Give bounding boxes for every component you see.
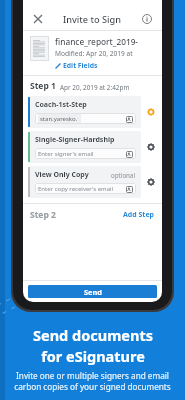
button[interactable]: View Only Copy [28, 166, 141, 198]
staticText: Modified: Apr 20, 2019 at 2:42pm [55, 49, 155, 58]
button[interactable]: Single-Signer-Hardship [28, 131, 141, 163]
button[interactable]: Send [28, 285, 157, 298]
staticText: stan.yaresko.test@gmail.com [40, 115, 79, 123]
button[interactable]: Contacts [125, 115, 133, 123]
button[interactable]: finance_report_2019-by_tag [30, 36, 155, 70]
staticText: Invite one or multiple signers and email… [8, 370, 177, 392]
staticText: Send documents [33, 325, 153, 345]
staticText: Single-Signer-Hardship [35, 135, 115, 145]
button[interactable]: Close [30, 11, 46, 27]
staticText: Coach-1st-Step [35, 100, 87, 110]
staticText: optional [111, 171, 136, 179]
staticText: Step 2 [30, 209, 56, 221]
staticText: finance_report_2019-by_tag [55, 36, 155, 47]
button[interactable]: Contacts [125, 150, 133, 158]
staticText: Enter copy receiver's email [38, 185, 114, 193]
button[interactable]: Add Step [123, 210, 155, 220]
staticText: Send [84, 287, 102, 297]
staticText: Add Step [123, 210, 155, 220]
button[interactable]: Contacts [125, 185, 133, 193]
button[interactable]: Coach-1st-Step [28, 96, 141, 128]
button[interactable]: Edit Fields [55, 61, 98, 70]
button[interactable]: Settings [145, 141, 157, 153]
staticText: Edit Fields [63, 61, 98, 70]
staticText: Invite to Sign [63, 13, 122, 26]
staticText: Apr 20, 2019 at 2:42pm [60, 83, 130, 92]
button[interactable]: Settings [145, 106, 157, 118]
staticText: Step 1 [30, 80, 56, 92]
staticText: for eSignature [41, 346, 145, 366]
staticText: View Only Copy [35, 170, 89, 180]
staticText: Enter signer's email [38, 150, 94, 158]
button[interactable]: Settings [145, 176, 157, 188]
button[interactable]: Info [139, 11, 155, 27]
